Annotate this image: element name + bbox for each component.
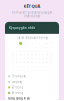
staticText: 65 <box>46 62 48 63</box>
staticText: 34 <box>12 54 14 56</box>
staticText: Tổng cộng 4 số <box>8 97 30 100</box>
staticText: Số trùng <box>12 86 24 89</box>
staticText: 33 <box>50 50 52 52</box>
staticText: 85 <box>39 69 41 71</box>
staticText: 56 <box>12 62 14 63</box>
staticText: 48 <box>23 58 25 60</box>
staticText: 16 <box>27 46 29 48</box>
staticText: 82 <box>27 69 29 71</box>
staticText: nhất của bạn <box>23 14 40 18</box>
staticText: 68 <box>16 65 18 67</box>
staticText: Xem lại kết quả các kỳ quay gần <box>11 11 52 14</box>
staticText: 10 <box>46 43 48 44</box>
staticText: 80 <box>20 69 22 71</box>
staticText: 64 <box>42 62 44 63</box>
staticText: 72 <box>31 65 33 67</box>
staticText: 75 <box>42 65 44 67</box>
staticText: 20 <box>42 46 44 48</box>
staticText: 57 <box>16 62 18 63</box>
staticText: 42 <box>42 54 44 56</box>
staticText: Kỳ quay gần nhất <box>9 26 35 30</box>
staticText: 28 <box>31 50 33 52</box>
staticText: 23 <box>12 50 14 52</box>
staticText: KẾT QUẢ <box>23 3 40 9</box>
staticText: 13 <box>16 46 18 48</box>
staticText: 44 <box>50 54 52 56</box>
staticText: 47 <box>20 58 22 60</box>
staticText: 78 <box>12 69 14 71</box>
staticText: 40 <box>35 54 37 56</box>
staticText: 87 <box>46 69 48 71</box>
staticText: 46 <box>16 58 18 60</box>
staticText: 18 <box>35 46 37 48</box>
staticText: Đã quay <box>12 80 22 84</box>
staticText: 59 <box>23 62 25 63</box>
staticText: 88 <box>50 69 52 71</box>
staticText: 30 <box>39 50 41 52</box>
staticText: 61 <box>31 62 33 63</box>
staticText: 66 <box>50 62 52 63</box>
staticText: 26 <box>23 50 25 52</box>
staticText: 63 <box>39 62 41 63</box>
staticText: 35 <box>16 54 18 56</box>
staticText: 76 <box>46 65 48 67</box>
staticText: 39 <box>31 54 33 56</box>
staticText: 38 <box>27 54 29 56</box>
staticText: Chưa quay <box>12 74 26 78</box>
staticText: 67 <box>12 65 14 67</box>
staticText: 43 <box>46 54 48 56</box>
staticText: 62 <box>35 62 37 63</box>
staticText: 69 <box>20 65 22 67</box>
staticText: 32 <box>46 50 48 52</box>
staticText: 41 <box>39 54 41 56</box>
staticText: 83 <box>31 69 33 71</box>
staticText: 60 <box>27 62 29 63</box>
staticText: 27 <box>27 50 29 52</box>
staticText: Số trúng <box>12 91 24 95</box>
staticText: 73 <box>35 65 37 67</box>
staticText: 86 <box>42 69 44 71</box>
staticText: 70 <box>23 65 25 67</box>
staticText: 36 <box>20 54 22 56</box>
staticText: Các số đã quay hôm nay <box>16 36 47 39</box>
staticText: 22 <box>50 46 52 48</box>
staticText: 58 <box>20 62 22 63</box>
staticText: 74 <box>39 65 41 67</box>
staticText: 21 <box>46 46 48 48</box>
staticText: 12 <box>12 46 14 48</box>
